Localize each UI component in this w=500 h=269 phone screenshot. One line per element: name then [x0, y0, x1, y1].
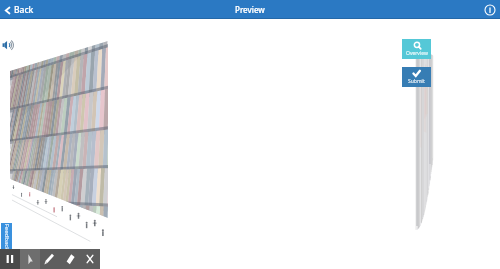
button[interactable]: Pause [0, 249, 20, 269]
staticText: Back [14, 4, 34, 16]
staticText: Feedback [2, 223, 10, 250]
button[interactable]: Overview [402, 39, 431, 59]
button[interactable]: Back [0, 4, 40, 16]
button[interactable]: Pen [40, 249, 60, 269]
staticText: Submit [408, 78, 425, 85]
button[interactable]: Info [484, 4, 496, 16]
button[interactable]: Close [80, 249, 100, 269]
staticText: Preview [235, 4, 265, 15]
button[interactable]: Feedback [1, 223, 12, 249]
button[interactable]: Audio [2, 39, 16, 51]
button[interactable]: Eraser [60, 249, 80, 269]
staticText: Overview [406, 50, 428, 57]
button[interactable]: Submit [402, 67, 431, 87]
button[interactable]: Select [20, 249, 40, 269]
